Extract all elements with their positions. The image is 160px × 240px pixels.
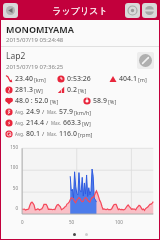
staticText: [%] [78,87,87,94]
staticText: 48.0 : 52.0 [15,96,49,106]
staticText: / [42,108,45,116]
staticText: / [42,130,45,138]
staticText: [km/h] [74,109,92,116]
staticText: [W] [34,87,43,94]
button[interactable]: Edit [137,52,154,69]
staticText: 100 [10,164,18,170]
staticText: / [46,119,49,127]
staticText: 24.9 [26,107,40,117]
staticText: [km] [34,76,46,83]
staticText: Avg. [15,120,25,126]
staticText: Avg. [15,109,25,115]
staticText: 23.40 [15,74,33,84]
staticText: [m] [138,76,147,83]
staticText: 50 [69,219,75,225]
staticText: [%] [108,98,117,105]
staticText: 404.1 [119,74,137,84]
staticText: 2015/07/19 07:36:25 [6,63,64,71]
staticText: 281.3 [15,85,33,95]
staticText: ラップリスト [52,5,108,16]
staticText: 214.4 [26,118,44,128]
staticText: Max. [51,120,62,126]
staticText: 2015/07/19 05:24:48 [6,36,64,44]
staticText: 663.3 [63,118,81,128]
staticText: [%] [50,98,59,105]
button[interactable]: Page 1 [73,233,76,236]
staticText: 0 [21,219,24,225]
staticText: 0.2 [67,85,77,95]
staticText: Avg. [15,131,25,137]
button[interactable]: Record [125,3,140,18]
button[interactable]: Page 2 [85,233,88,236]
staticText: Lap2 [6,50,26,62]
button[interactable]: Back [3,3,18,18]
staticText: 150 [10,144,18,150]
button[interactable]: Menu [142,3,157,18]
staticText: 58.9 [93,96,107,106]
staticText: 0:53:26 [67,74,91,84]
staticText: 100 [115,219,123,225]
staticText: 57.9 [59,107,73,117]
staticText: 116.0 [59,129,77,139]
staticText: Max. [47,109,58,115]
staticText: Max. [47,131,58,137]
staticText: [rpm] [78,131,93,138]
staticText: 80.1 [26,129,40,139]
staticText: [W] [82,120,91,127]
staticText: 50 [12,185,18,191]
staticText: MONOMIYAMA [6,23,75,35]
staticText: 0 [15,205,18,211]
